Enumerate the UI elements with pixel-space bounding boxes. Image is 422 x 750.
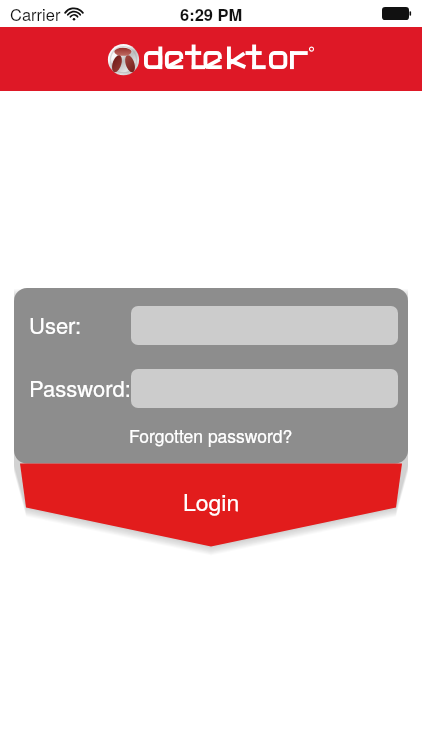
staticText: User: — [29, 309, 82, 341]
staticText: Carrier — [10, 2, 61, 26]
staticText: Login — [183, 485, 240, 518]
button[interactable]: Forgotten password? — [14, 420, 408, 450]
staticText: 6:29 PM — [180, 2, 243, 26]
staticText: Forgotten password? — [129, 423, 293, 448]
button[interactable]: Login — [20, 463, 402, 541]
button[interactable]: Password field — [131, 369, 398, 408]
staticText: Password: — [29, 372, 131, 404]
button[interactable]: User name field — [131, 306, 398, 345]
